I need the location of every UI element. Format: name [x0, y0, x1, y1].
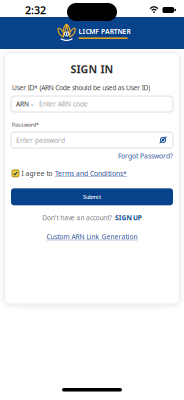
button[interactable]: Show password — [158, 136, 168, 144]
button[interactable]: ARN - — [11, 96, 173, 112]
staticText: Enter password — [16, 136, 65, 145]
staticText: LICMF PARTNER — [79, 27, 130, 36]
staticText: Forgot Password? — [118, 152, 173, 160]
staticText: I agree to — [21, 169, 52, 178]
staticText: 2:32 — [25, 3, 46, 17]
button[interactable]: Custom ARN Link Generation — [46, 232, 137, 241]
staticText: SIGN IN — [70, 62, 113, 76]
staticText: Submit — [83, 193, 101, 200]
button[interactable]: Submit — [11, 188, 173, 205]
staticText: User ID* (ARN Code should be used as Use… — [12, 83, 150, 92]
staticText: SIGN UP — [115, 213, 142, 222]
staticText: Terms and Conditions* — [55, 169, 127, 178]
staticText: Don't have an account? — [42, 213, 112, 222]
button[interactable]: I agree to Terms and Conditions — [12, 170, 19, 177]
staticText: ARN - — [16, 100, 33, 108]
button[interactable]: Forgot Password? — [118, 152, 173, 160]
button[interactable]: SIGN UP — [115, 213, 142, 222]
staticText: Custom ARN Link Generation — [46, 232, 137, 241]
staticText: Password* — [12, 121, 39, 128]
button[interactable]: Terms and Conditions* — [55, 169, 127, 178]
staticText: Enter ARN code — [39, 100, 88, 108]
button[interactable]: Enter password — [11, 132, 173, 148]
